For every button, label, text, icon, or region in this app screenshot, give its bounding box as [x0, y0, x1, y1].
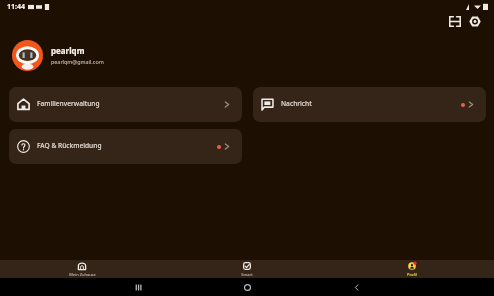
- button[interactable]: Profil: [329, 261, 494, 277]
- button[interactable]: Recent apps: [118, 278, 158, 296]
- button[interactable]: Nachricht: [253, 87, 486, 122]
- button[interactable]: FAQ & Rückmeldung: [9, 129, 242, 164]
- staticText: 11:44: [7, 2, 25, 12]
- button[interactable]: Back: [336, 278, 376, 296]
- button[interactable]: Smart: [164, 261, 329, 277]
- button[interactable]: Home: [227, 278, 267, 296]
- staticText: FAQ & Rückmeldung: [37, 141, 102, 150]
- staticText: Mein Zuhause: [69, 272, 96, 277]
- staticText: pearlqm: [51, 45, 85, 56]
- staticText: Smart: [241, 272, 253, 277]
- staticText: pearlqm@gmail.com: [51, 58, 104, 65]
- staticText: Profil: [407, 272, 417, 277]
- button[interactable]: Scan QR code: [445, 13, 464, 30]
- staticText: Nachricht: [281, 99, 312, 108]
- staticText: Familienverwaltung: [37, 99, 100, 108]
- button[interactable]: Familienverwaltung: [9, 87, 242, 122]
- button[interactable]: Mein Zuhause: [0, 261, 164, 277]
- button[interactable]: Settings: [465, 13, 484, 30]
